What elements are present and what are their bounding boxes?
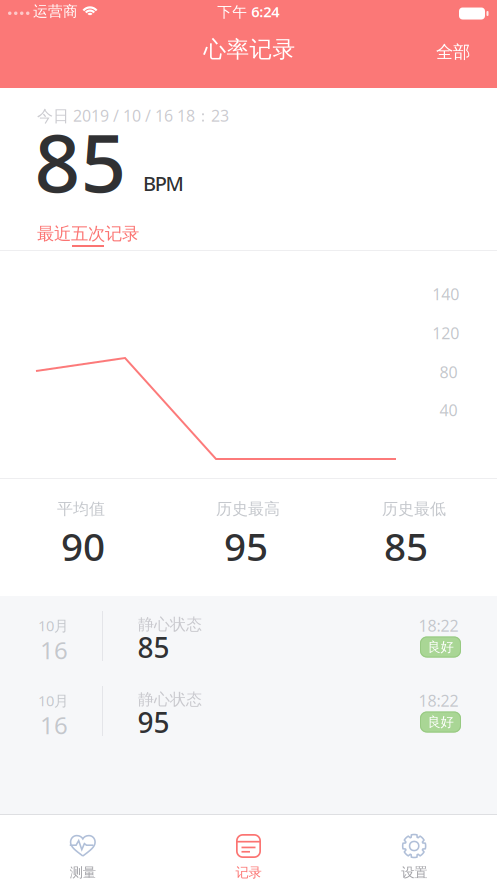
staticText: 18:22 xyxy=(418,690,458,711)
staticText: 95 xyxy=(137,703,169,741)
staticText: 静心状态 xyxy=(138,690,202,709)
staticText: 静心状态 xyxy=(138,615,202,634)
staticText: 记录 xyxy=(235,864,261,881)
staticText: 85 xyxy=(137,628,169,666)
staticText: BPM xyxy=(143,170,184,197)
staticText: 心率记录 xyxy=(203,36,295,63)
staticText: 全部 xyxy=(436,41,470,63)
staticText: 40 xyxy=(439,399,457,421)
button[interactable]: 全部 xyxy=(436,41,470,63)
staticText: 16 xyxy=(40,709,68,741)
staticText: 下午 6:24 xyxy=(217,2,279,21)
staticText: 运营商 xyxy=(33,2,78,20)
staticText: 16 xyxy=(40,634,68,666)
button[interactable]: 10月 xyxy=(0,596,497,671)
staticText: 历史最低 xyxy=(382,499,446,519)
staticText: 设置 xyxy=(401,864,427,881)
button[interactable]: 10月 xyxy=(0,671,497,746)
staticText: 测量 xyxy=(70,864,96,881)
staticText: 最近五次记录 xyxy=(37,223,139,244)
staticText: 95 xyxy=(224,520,268,572)
staticText: 85 xyxy=(384,520,428,572)
staticText: 良好 xyxy=(427,714,453,730)
staticText: 平均值 xyxy=(57,499,105,519)
staticText: 85 xyxy=(34,108,126,214)
staticText: 10月 xyxy=(38,616,69,635)
staticText: 90 xyxy=(61,520,105,572)
staticText: 120 xyxy=(432,322,459,344)
button[interactable]: 设置 xyxy=(331,815,497,883)
staticText: 18:22 xyxy=(418,615,458,636)
staticText: 140 xyxy=(432,283,459,305)
button[interactable]: 记录 xyxy=(166,815,331,883)
staticText: 良好 xyxy=(427,639,453,655)
staticText: 历史最高 xyxy=(216,499,280,519)
button[interactable]: 测量 xyxy=(0,815,166,883)
staticText: 80 xyxy=(439,361,457,383)
staticText: 今日 2019 / 10 / 16 18：23 xyxy=(37,105,229,126)
staticText: 10月 xyxy=(38,691,69,710)
